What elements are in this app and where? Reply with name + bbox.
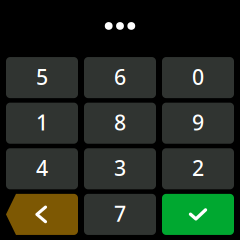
staticText: 3	[114, 154, 126, 182]
staticText: 0	[192, 62, 204, 91]
button[interactable]: 8	[84, 103, 156, 144]
button[interactable]: 5	[6, 57, 78, 98]
button[interactable]: Delete	[6, 194, 78, 235]
button[interactable]: 3	[84, 148, 156, 189]
button[interactable]: 9	[162, 103, 234, 144]
button[interactable]: 4	[6, 148, 78, 189]
staticText: 6	[114, 62, 126, 91]
staticText: 4	[36, 154, 48, 182]
button[interactable]: Confirm	[162, 194, 234, 235]
button[interactable]: 7	[84, 194, 156, 235]
staticText: 7	[114, 199, 126, 227]
button[interactable]: 6	[84, 57, 156, 98]
button[interactable]: 1	[6, 103, 78, 144]
staticText: 1	[36, 108, 48, 136]
button[interactable]: 0	[162, 57, 234, 98]
staticText: 2	[192, 154, 204, 182]
staticText: 5	[36, 62, 48, 91]
staticText: 8	[114, 108, 126, 136]
staticText: 9	[192, 108, 204, 136]
button[interactable]: 2	[162, 148, 234, 189]
